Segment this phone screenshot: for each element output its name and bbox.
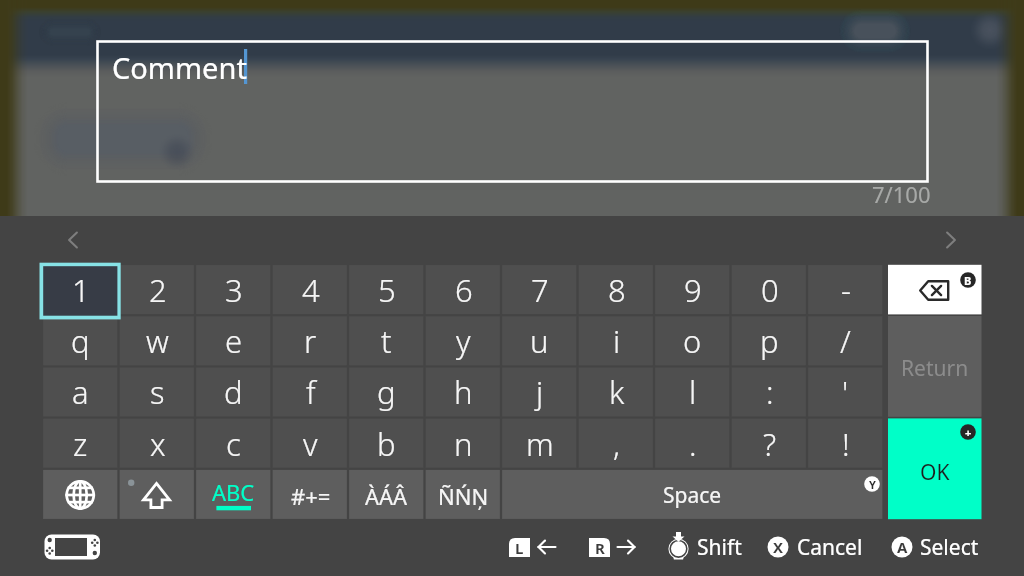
button[interactable]: p: [731, 315, 808, 366]
staticText: Select: [920, 533, 979, 562]
button[interactable]: !: [807, 418, 884, 469]
button[interactable]: /: [807, 315, 884, 366]
button[interactable]: Select: [920, 533, 979, 562]
staticText: d: [224, 371, 243, 413]
staticText: OK: [920, 458, 950, 487]
staticText: B: [964, 273, 972, 288]
button[interactable]: s: [119, 366, 196, 417]
staticText: A: [897, 537, 908, 557]
button[interactable]: ÑŃŅ: [425, 469, 502, 520]
button[interactable]: ÀÁÂ: [348, 469, 425, 520]
button[interactable]: Backspace: [888, 264, 982, 315]
button[interactable]: j: [501, 366, 578, 417]
staticText: g: [377, 371, 396, 413]
staticText: 6: [455, 269, 473, 311]
staticText: ÀÁÂ: [365, 481, 408, 511]
staticText: 3: [225, 269, 243, 311]
button[interactable]: 2: [119, 264, 196, 315]
button[interactable]: a: [42, 366, 119, 417]
button[interactable]: ': [807, 366, 884, 417]
button[interactable]: 7: [501, 264, 578, 315]
button[interactable]: w: [119, 315, 196, 366]
button[interactable]: Return: [888, 315, 982, 417]
button[interactable]: ABC: [195, 469, 272, 520]
staticText: .: [689, 423, 697, 465]
button[interactable]: u: [501, 315, 578, 366]
button[interactable]: 1: [42, 264, 119, 315]
staticText: +: [965, 425, 972, 440]
button[interactable]: 9: [654, 264, 731, 315]
button[interactable]: ?: [731, 418, 808, 469]
staticText: f: [306, 371, 316, 413]
button[interactable]: q: [42, 315, 119, 366]
button[interactable]: 3: [195, 264, 272, 315]
button[interactable]: 6: [425, 264, 502, 315]
staticText: r: [304, 320, 317, 362]
staticText: Y: [869, 477, 876, 492]
button[interactable]: -: [807, 264, 884, 315]
staticText: ,: [613, 423, 620, 465]
staticText: L: [515, 538, 524, 557]
button[interactable]: Cancel: [797, 533, 863, 562]
button[interactable]: Language: [42, 469, 119, 520]
staticText: Cancel: [797, 533, 863, 562]
button[interactable]: d: [195, 366, 272, 417]
button[interactable]: y: [425, 315, 502, 366]
staticText: 2: [149, 269, 167, 311]
button[interactable]: .: [654, 418, 731, 469]
staticText: Shift: [697, 533, 742, 562]
button[interactable]: l: [654, 366, 731, 417]
button[interactable]: c: [195, 418, 272, 469]
staticText: m: [526, 423, 554, 465]
staticText: w: [146, 320, 169, 362]
button[interactable]: t: [348, 315, 425, 366]
staticText: y: [456, 320, 471, 362]
staticText: p: [760, 320, 779, 362]
staticText: 5: [378, 269, 396, 311]
staticText: X: [773, 537, 784, 557]
staticText: 7: [531, 269, 549, 311]
staticText: z: [73, 423, 88, 465]
button[interactable]: 5: [348, 264, 425, 315]
button[interactable]: x: [119, 418, 196, 469]
staticText: s: [150, 371, 165, 413]
button[interactable]: Shift: [697, 533, 742, 562]
staticText: o: [683, 320, 702, 362]
button[interactable]: g: [348, 366, 425, 417]
button[interactable]: i: [578, 315, 655, 366]
button[interactable]: ,: [578, 418, 655, 469]
staticText: ÑŃŅ: [438, 481, 489, 511]
button[interactable]: f: [272, 366, 349, 417]
button[interactable]: e: [195, 315, 272, 366]
button[interactable]: 0: [731, 264, 808, 315]
button[interactable]: v: [272, 418, 349, 469]
button[interactable]: k: [578, 366, 655, 417]
staticText: i: [613, 320, 621, 362]
staticText: ABC: [212, 477, 255, 507]
button[interactable]: :: [731, 366, 808, 417]
button[interactable]: 4: [272, 264, 349, 315]
button[interactable]: n: [425, 418, 502, 469]
staticText: ': [842, 371, 849, 413]
button[interactable]: Console: [44, 534, 100, 560]
button[interactable]: m: [501, 418, 578, 469]
staticText: Space: [663, 481, 722, 510]
button[interactable]: #+=: [272, 469, 349, 520]
button[interactable]: h: [425, 366, 502, 417]
staticText: 1: [72, 269, 90, 311]
staticText: /: [840, 320, 851, 362]
button[interactable]: z: [42, 418, 119, 469]
button[interactable]: r: [272, 315, 349, 366]
button[interactable]: 8: [578, 264, 655, 315]
button[interactable]: Previous page: [55, 222, 91, 258]
staticText: !: [842, 423, 850, 465]
button[interactable]: Next page: [933, 222, 969, 258]
staticText: c: [226, 423, 241, 465]
staticText: b: [377, 423, 396, 465]
button[interactable]: o: [654, 315, 731, 366]
button[interactable]: OK: [888, 418, 982, 520]
button[interactable]: Space: [501, 469, 884, 520]
button[interactable]: b: [348, 418, 425, 469]
staticText: Comment: [112, 48, 247, 87]
button[interactable]: Shift: [119, 469, 196, 520]
